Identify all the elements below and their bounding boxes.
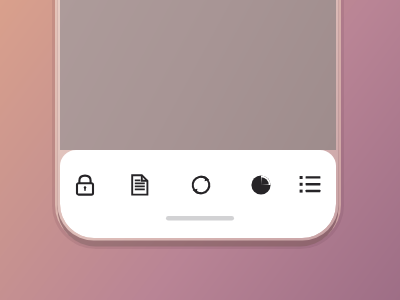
button[interactable]: Document xyxy=(118,163,162,207)
button[interactable]: Sync xyxy=(179,163,223,207)
button[interactable]: Lock xyxy=(63,163,107,207)
button[interactable]: Statistics xyxy=(239,163,283,207)
button[interactable]: List xyxy=(289,163,333,207)
